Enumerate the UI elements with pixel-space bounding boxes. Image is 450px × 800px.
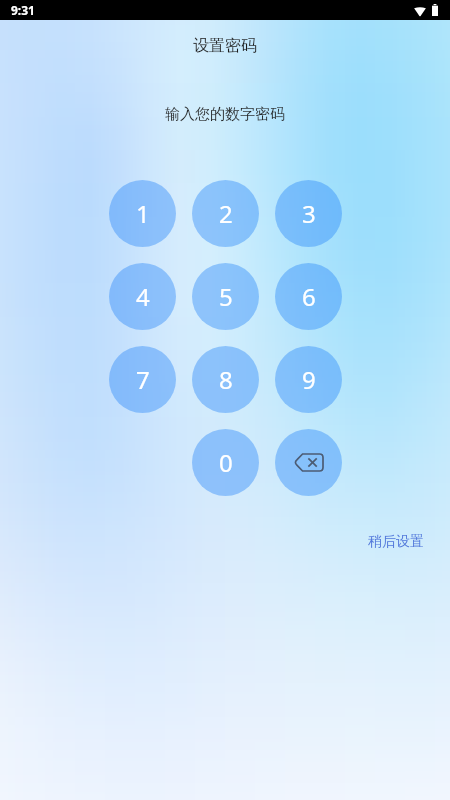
staticText: 1	[136, 197, 150, 230]
staticText: 3	[302, 197, 316, 230]
staticText: 稍后设置	[368, 533, 424, 551]
button[interactable]: 5	[192, 263, 259, 330]
staticText: 设置密码	[0, 36, 450, 56]
staticText: 4	[136, 280, 150, 313]
staticText: 5	[219, 280, 233, 313]
button[interactable]: 2	[192, 180, 259, 247]
staticText: 输入您的数字密码	[0, 105, 450, 124]
button[interactable]: 6	[275, 263, 342, 330]
staticText: 2	[219, 197, 233, 230]
button[interactable]: 0	[192, 429, 259, 496]
staticText: 9:31	[11, 2, 35, 18]
button[interactable]: Delete last digit	[275, 429, 342, 496]
staticText: 0	[219, 446, 233, 479]
button[interactable]: 7	[109, 346, 176, 413]
staticText: 6	[302, 280, 316, 313]
button[interactable]: 稍后设置	[340, 527, 450, 557]
other: Wi-Fi signal	[414, 5, 426, 16]
button[interactable]: 9	[275, 346, 342, 413]
staticText: 8	[219, 363, 233, 396]
other: Battery	[432, 4, 438, 16]
button[interactable]: 3	[275, 180, 342, 247]
staticText: 7	[136, 363, 150, 396]
staticText: 9	[302, 363, 316, 396]
button[interactable]: 4	[109, 263, 176, 330]
button[interactable]: 8	[192, 346, 259, 413]
button[interactable]: 1	[109, 180, 176, 247]
